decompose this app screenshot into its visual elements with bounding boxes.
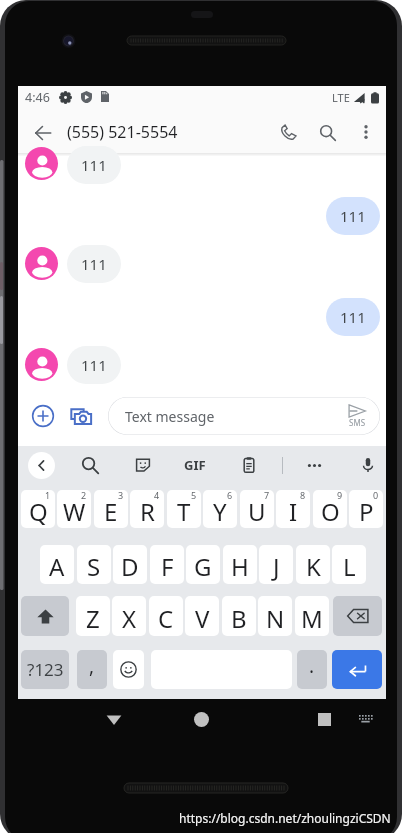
staticText: ?123 [27,658,64,681]
button[interactable]: L [332,545,366,584]
button[interactable]: 111 [67,245,121,283]
button[interactable]: Period [297,650,327,689]
staticText: F [161,550,174,583]
button[interactable]: Back [24,114,62,152]
button[interactable]: Emoji [113,650,144,689]
staticText: 111 [81,254,107,274]
button[interactable]: Collapse toolbar [28,452,55,479]
button[interactable]: K [296,545,330,584]
button[interactable]: V [185,596,219,636]
staticText: LTE [332,90,350,105]
button[interactable]: GIF [179,449,211,481]
button[interactable]: F [150,545,184,584]
button[interactable]: 111 [67,346,121,384]
staticText: I [289,495,298,528]
button[interactable]: H [223,545,257,584]
staticText: G [194,550,212,583]
staticText: V [195,602,210,635]
staticText: C [158,602,174,635]
button[interactable]: Search [74,449,106,481]
button[interactable]: Add attachment [24,397,62,435]
button[interactable]: Q [21,490,55,528]
button[interactable]: 111 [67,146,121,184]
staticText: U [248,495,266,528]
staticText: 4:46 [25,89,50,106]
staticText: A [49,550,65,583]
button[interactable]: B [222,596,256,636]
staticText: L [343,550,356,583]
button[interactable]: P [349,490,383,528]
button[interactable]: Text message [108,397,380,435]
button[interactable]: X [112,596,146,636]
staticText: K [306,550,321,583]
staticText: https://blog.csdn.net/zhoulingziCSDN [179,810,391,826]
button[interactable]: M [295,596,329,636]
staticText: T [177,495,191,528]
staticText: P [359,495,374,528]
staticText: D [121,550,139,583]
button[interactable]: Voice input [352,449,384,481]
staticText: 9 [337,490,343,501]
staticText: SMS [349,417,366,428]
button[interactable]: Stickers [127,449,159,481]
staticText: 8 [300,490,306,501]
button[interactable]: 111 [326,197,380,235]
staticText: X [122,602,137,635]
button[interactable]: Recent apps [306,701,342,737]
staticText: GIF [184,456,206,474]
staticText: M [301,602,323,635]
button[interactable]: Z [76,596,110,636]
button[interactable]: 111 [326,298,380,336]
button[interactable]: U [240,490,274,528]
staticText: R [140,495,155,528]
staticText: 7 [264,490,270,501]
button[interactable]: O [313,490,347,528]
button[interactable]: E [94,490,128,528]
button[interactable]: N [258,596,292,636]
staticText: 111 [81,155,107,175]
staticText: 1 [45,490,51,501]
staticText: B [231,602,247,635]
button[interactable]: More [298,449,330,481]
button[interactable]: G [186,545,220,584]
button[interactable]: S [77,545,111,584]
button[interactable]: Call [269,113,307,151]
button[interactable]: T [167,490,201,528]
staticText: N [266,602,285,635]
button[interactable]: I [276,490,310,528]
button[interactable]: J [259,545,293,584]
button[interactable]: Search [308,113,346,151]
button[interactable]: Switch keyboard [349,703,381,735]
staticText: Z [86,602,100,635]
staticText: S [87,550,101,583]
staticText: 111 [340,307,366,327]
button[interactable]: Enter [332,650,382,689]
button[interactable]: W [57,490,91,528]
button[interactable]: A [40,545,74,584]
button[interactable]: Symbols [21,650,69,689]
staticText: W [63,495,86,528]
button[interactable]: Comma [77,650,107,689]
staticText: 0 [373,490,379,501]
button[interactable]: Y [203,490,237,528]
staticText: 5 [191,490,197,501]
button[interactable]: Back [96,701,132,737]
button[interactable]: R [130,490,164,528]
button[interactable]: Clipboard [233,449,265,481]
button[interactable]: C [149,596,183,636]
staticText: 4 [154,490,160,501]
staticText: Text message [125,407,215,426]
button[interactable]: Backspace [333,596,382,636]
staticText: 6 [227,490,233,501]
button[interactable]: Camera [62,397,100,435]
staticText: Q [29,495,48,528]
button[interactable]: D [113,545,147,584]
staticText: Y [213,495,227,528]
staticText: , [89,653,95,679]
staticText: 3 [118,490,124,501]
button[interactable]: Shift [21,596,69,636]
staticText: H [231,550,249,583]
button[interactable]: Home [183,701,219,737]
button[interactable]: More options [347,113,385,151]
